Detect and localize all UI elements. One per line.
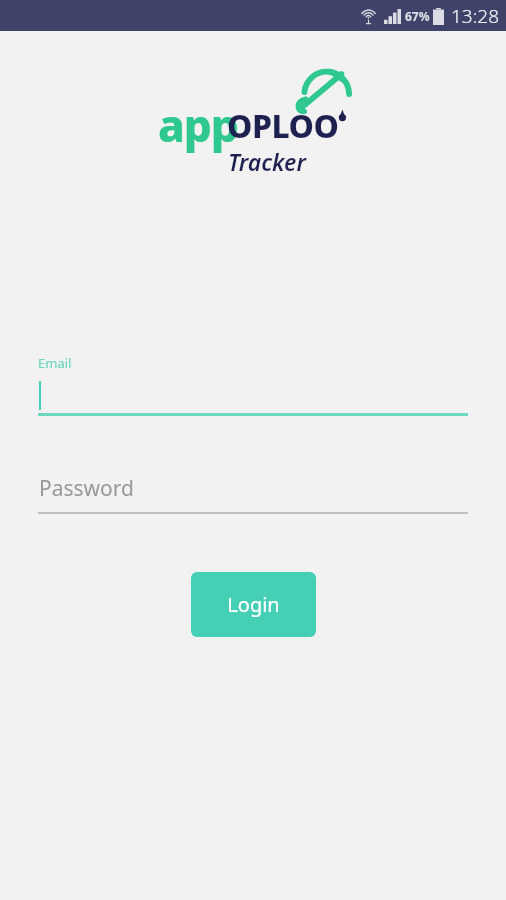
- staticText: Email: [38, 354, 72, 372]
- staticText: Tracker: [228, 146, 306, 177]
- button[interactable]: Login: [191, 572, 316, 637]
- button[interactable]: Email: [38, 350, 468, 416]
- staticText: OPLOO: [227, 104, 339, 148]
- staticText: Password: [39, 474, 134, 503]
- staticText: Login: [227, 591, 280, 618]
- staticText: 67%: [405, 8, 430, 24]
- staticText: 13:28: [451, 3, 500, 29]
- staticText: app: [158, 95, 238, 155]
- button[interactable]: Password: [38, 468, 468, 514]
